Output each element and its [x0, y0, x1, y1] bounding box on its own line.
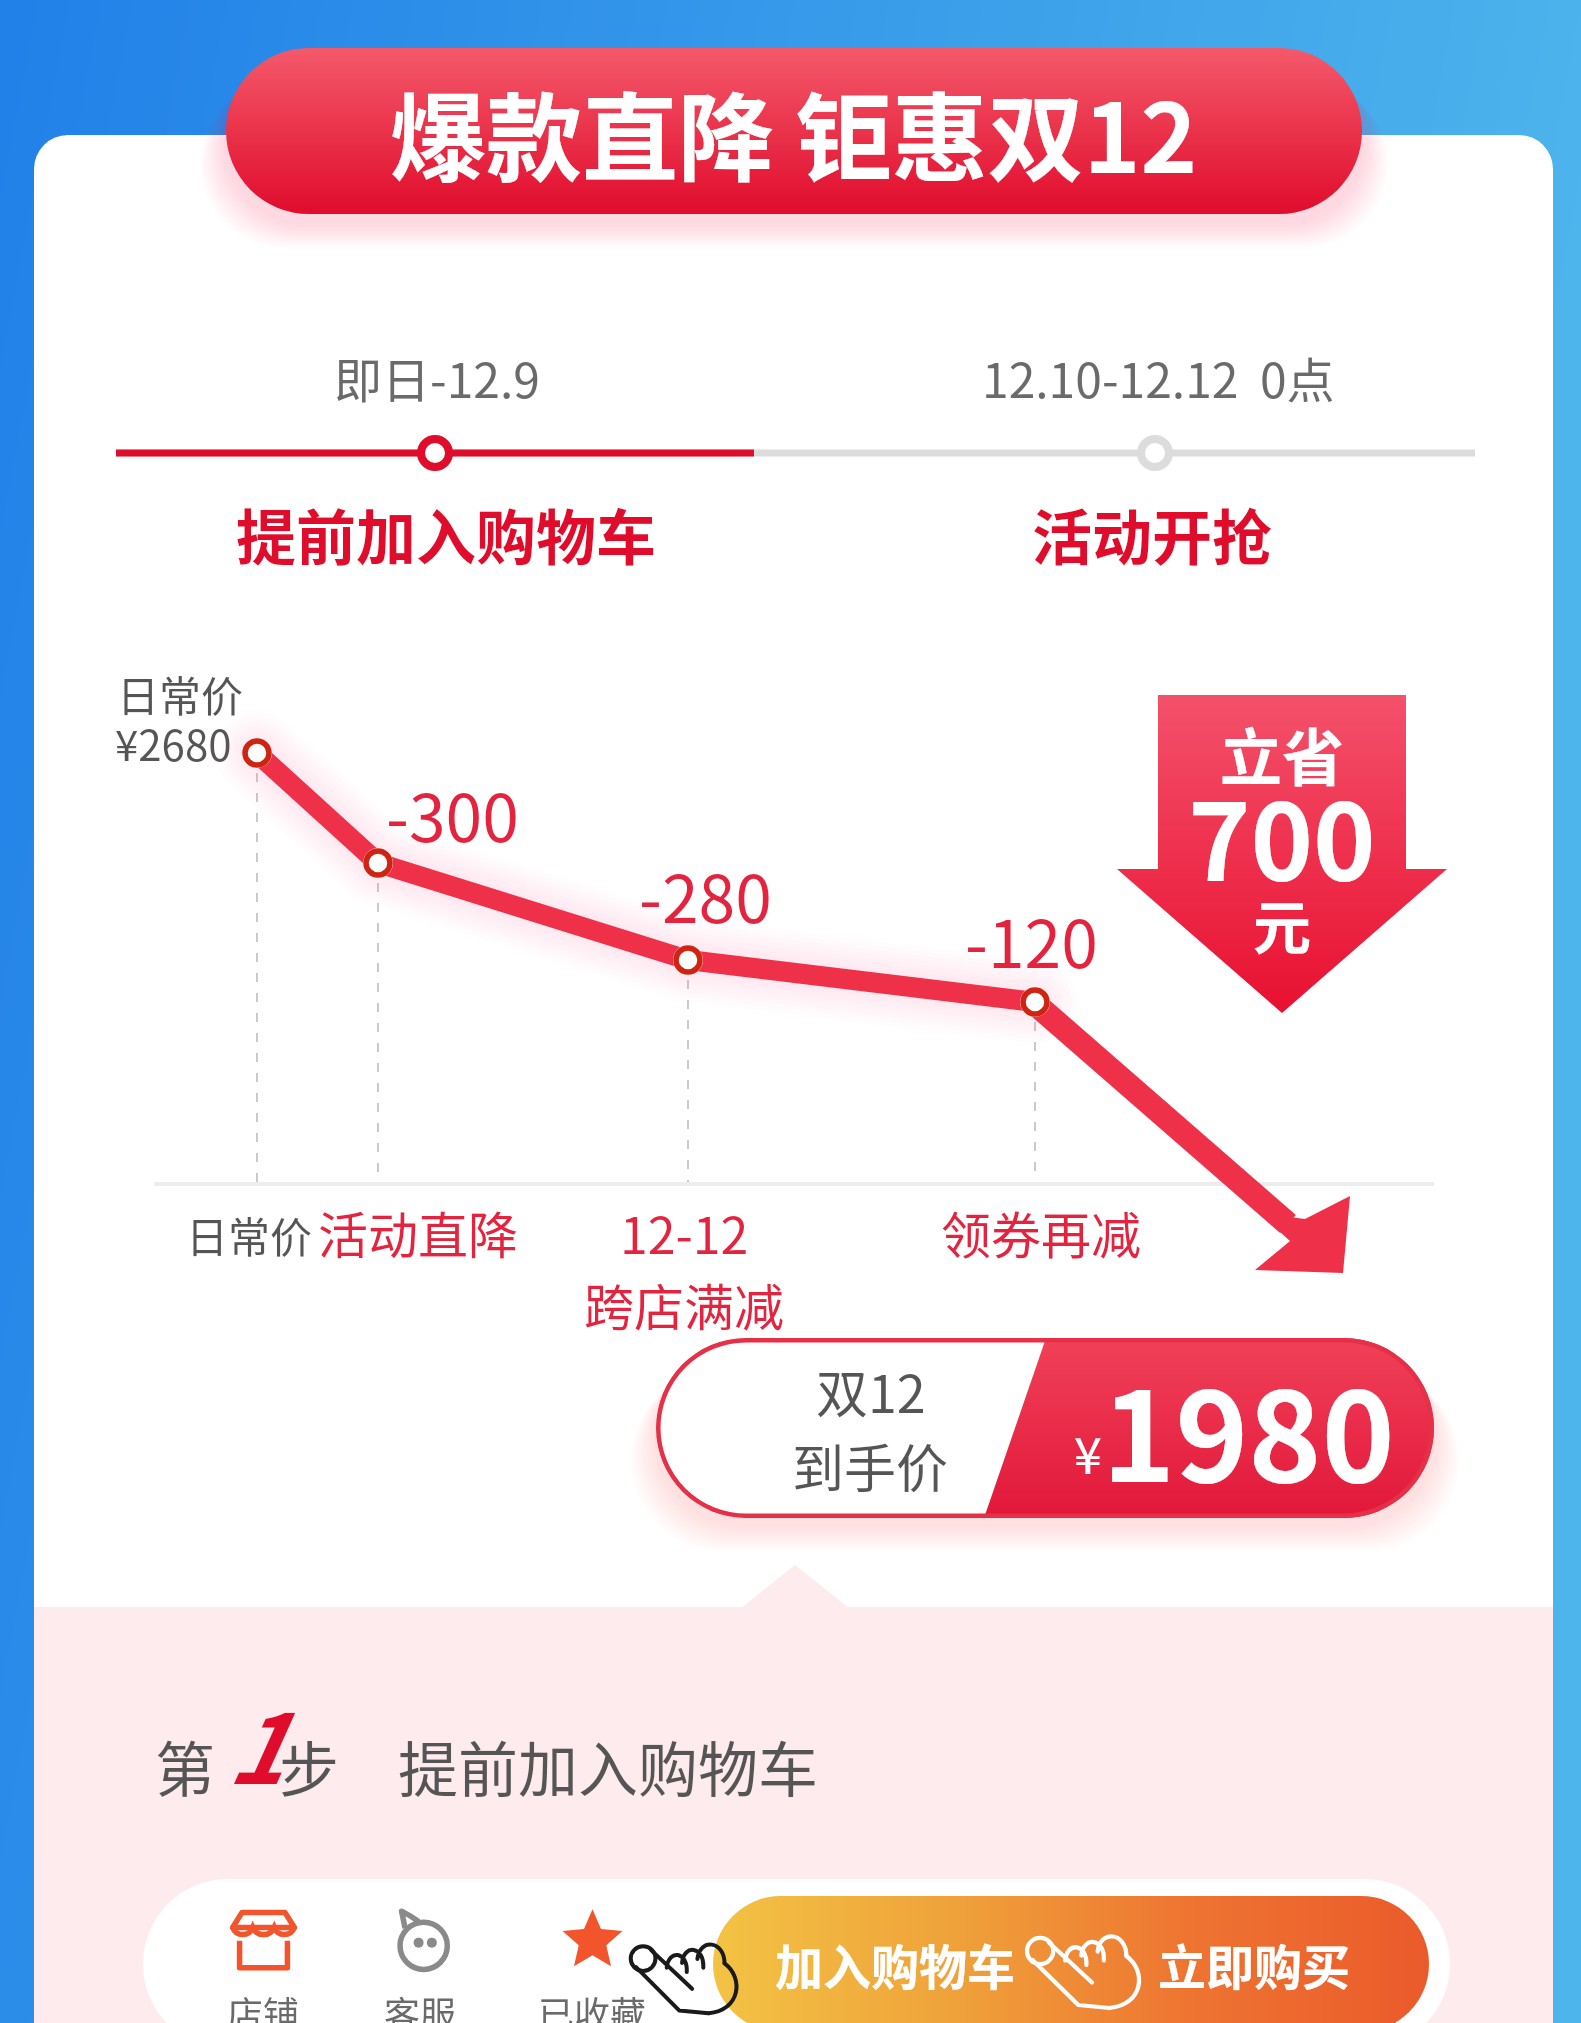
staticText: 1: [226, 1673, 283, 1812]
staticText: 立即购买: [1158, 1929, 1351, 1999]
staticText: -120: [965, 891, 1098, 987]
staticText: ¥2680: [115, 712, 232, 773]
staticText: 即日-12.9: [334, 342, 540, 412]
staticText: 店铺: [227, 1986, 300, 2023]
button[interactable]: 爆款直降 钜惠双12: [226, 48, 1362, 214]
staticText: 步: [279, 1722, 339, 1809]
other: Tap hint: [1022, 1915, 1147, 2015]
other: Tap hint: [626, 1924, 744, 2020]
staticText: -300: [386, 765, 519, 861]
staticText: 日常价: [186, 1204, 313, 1265]
button[interactable]: 提前加入购物车: [116, 330, 756, 580]
staticText: 到手价: [792, 1428, 949, 1503]
staticText: 提前加入购物车: [398, 1722, 818, 1809]
staticText: 日常价: [117, 663, 244, 724]
staticText: 元: [1253, 882, 1312, 966]
staticText: 已收藏: [538, 1986, 647, 2023]
button[interactable]: 店铺: [183, 1890, 343, 2023]
staticText: 第: [155, 1722, 215, 1809]
staticText: 提前加入购物车: [236, 490, 656, 577]
staticText: 跨店满减: [584, 1268, 784, 1340]
button[interactable]: 加入购物车: [713, 1896, 1071, 2023]
button[interactable]: 双12: [656, 1338, 1434, 1518]
staticText: 12.10-12.12 0点: [982, 342, 1335, 412]
button[interactable]: 立即购买: [1071, 1896, 1429, 2023]
staticText: 爆款直降 钜惠双12: [390, 62, 1198, 201]
staticText: 活动开抢: [1032, 490, 1272, 577]
staticText: 领券再减: [941, 1196, 1141, 1268]
staticText: 活动直降: [318, 1196, 518, 1268]
staticText: 700: [1188, 758, 1376, 911]
button[interactable]: 客服: [340, 1890, 500, 2023]
staticText: ¥: [1074, 1416, 1102, 1488]
staticText: 12-12: [620, 1196, 749, 1268]
staticText: 1980: [1102, 1338, 1395, 1518]
staticText: 客服: [384, 1986, 457, 2023]
button[interactable]: 活动开抢: [836, 330, 1476, 580]
staticText: 双12: [816, 1353, 926, 1428]
button[interactable]: 已收藏: [512, 1890, 672, 2023]
staticText: 加入购物车: [775, 1929, 1016, 1999]
staticText: -280: [639, 846, 772, 942]
staticText: 立省: [1220, 709, 1345, 799]
